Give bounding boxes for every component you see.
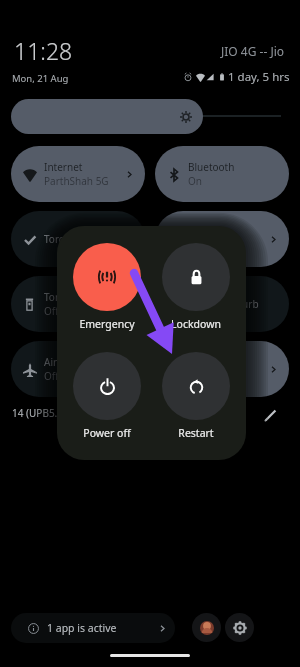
button[interactable]: Do Not Disturb bbox=[155, 276, 289, 332]
staticText: Airplane bbox=[44, 355, 84, 369]
staticText: 14 (UPB5.230623.005) bbox=[12, 406, 115, 420]
staticText: 1 app is active bbox=[47, 621, 117, 635]
staticText: Off bbox=[44, 369, 59, 383]
button[interactable]: 1 app is active bbox=[11, 613, 175, 643]
staticText: JIO 4G -- Jio bbox=[221, 43, 285, 59]
button[interactable]: Lockdown bbox=[161, 243, 231, 331]
staticText: ParthShah 5G bbox=[44, 174, 109, 188]
button[interactable]: User account bbox=[192, 613, 221, 642]
button[interactable] bbox=[155, 341, 289, 397]
button[interactable]: Emergency bbox=[72, 243, 142, 331]
staticText: Off bbox=[44, 304, 59, 318]
staticText: Torch bbox=[44, 290, 70, 304]
staticText: Restart bbox=[178, 426, 214, 440]
button[interactable]: Bluetooth bbox=[155, 146, 289, 202]
staticText: Emergency bbox=[79, 317, 135, 331]
staticText: Torch bbox=[44, 232, 70, 246]
button[interactable]: Restart bbox=[161, 352, 231, 440]
button[interactable]: Torch bbox=[11, 211, 145, 267]
staticText: Internet bbox=[44, 160, 83, 174]
button[interactable]: Airplane bbox=[11, 341, 145, 397]
staticText: 11:28 bbox=[14, 35, 73, 66]
staticText: On bbox=[188, 174, 202, 188]
staticText: Power off bbox=[83, 426, 131, 440]
staticText: 1 day, 5 hrs bbox=[228, 69, 290, 85]
button[interactable]: Settings bbox=[225, 613, 254, 642]
button[interactable]: Edit tiles bbox=[260, 405, 280, 425]
staticText: Bluetooth bbox=[188, 160, 235, 174]
staticText: Lockdown bbox=[171, 317, 221, 331]
button[interactable]: Power off bbox=[72, 352, 142, 440]
button[interactable]: Torch bbox=[11, 276, 145, 332]
button[interactable] bbox=[155, 211, 289, 267]
staticText: Mon, 21 Aug bbox=[12, 72, 69, 85]
button[interactable]: Brightness bbox=[11, 99, 203, 134]
button[interactable]: Internet bbox=[11, 146, 145, 202]
staticText: Do Not Disturb bbox=[188, 297, 259, 311]
